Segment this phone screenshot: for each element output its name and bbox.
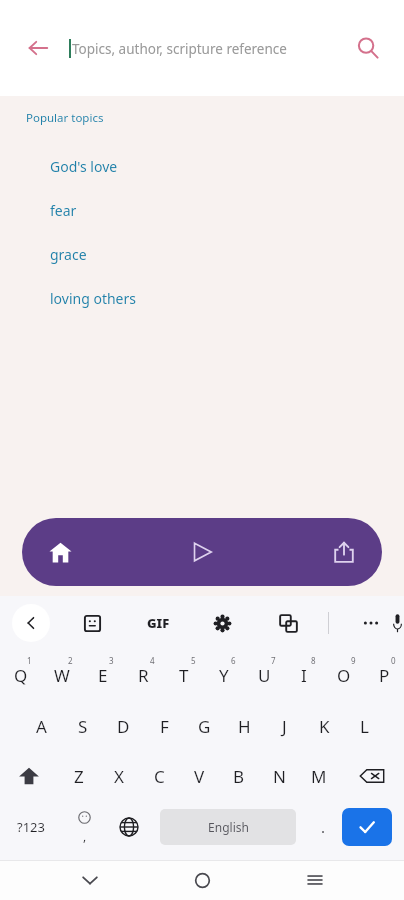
button[interactable]: F bbox=[144, 701, 184, 751]
button[interactable]: Emoji bbox=[62, 801, 106, 853]
staticText: 5 bbox=[191, 655, 196, 666]
staticText: GIF bbox=[147, 614, 170, 632]
button[interactable]: Backspace bbox=[339, 751, 404, 801]
staticText: A bbox=[36, 715, 47, 738]
staticText: Q bbox=[14, 664, 28, 687]
staticText: 2 bbox=[68, 655, 73, 666]
button[interactable]: C bbox=[139, 751, 179, 801]
button[interactable]: M bbox=[299, 751, 339, 801]
staticText: P bbox=[379, 664, 390, 687]
button[interactable]: Collapse toolbar bbox=[12, 604, 50, 642]
button[interactable]: N bbox=[259, 751, 299, 801]
button[interactable]: Settings bbox=[202, 603, 242, 643]
button[interactable]: God's love bbox=[0, 144, 404, 188]
staticText: J bbox=[282, 715, 287, 738]
staticText: R bbox=[138, 664, 149, 687]
staticText: H bbox=[238, 715, 251, 738]
button[interactable]: Q bbox=[0, 649, 41, 701]
staticText: . bbox=[321, 817, 326, 837]
staticText: 9 bbox=[351, 655, 356, 666]
staticText: F bbox=[160, 715, 169, 738]
staticText: K bbox=[319, 715, 330, 738]
button[interactable]: Stickers bbox=[72, 603, 112, 643]
button[interactable]: H bbox=[224, 701, 264, 751]
button[interactable]: Enter bbox=[342, 808, 392, 846]
button[interactable]: Play bbox=[142, 518, 262, 586]
staticText: grace bbox=[50, 245, 87, 264]
staticText: G bbox=[198, 715, 211, 738]
staticText: M bbox=[311, 765, 327, 788]
button[interactable]: T bbox=[164, 649, 204, 701]
button[interactable]: Home bbox=[179, 860, 225, 900]
button[interactable]: fear bbox=[0, 188, 404, 232]
button[interactable]: loving others bbox=[0, 276, 404, 320]
button[interactable]: Home bbox=[22, 518, 142, 586]
staticText: S bbox=[78, 715, 88, 738]
staticText: 4 bbox=[150, 655, 155, 666]
staticText: 8 bbox=[311, 655, 316, 666]
staticText: 7 bbox=[271, 655, 276, 666]
staticText: L bbox=[360, 715, 369, 738]
staticText: C bbox=[154, 765, 165, 788]
button[interactable]: I bbox=[284, 649, 324, 701]
button[interactable]: U bbox=[244, 649, 284, 701]
button[interactable]: Back bbox=[67, 860, 113, 900]
button[interactable]: W bbox=[41, 649, 82, 701]
button[interactable]: V bbox=[179, 751, 219, 801]
button[interactable]: R bbox=[123, 649, 164, 701]
staticText: God's love bbox=[50, 157, 118, 176]
staticText: fear bbox=[50, 201, 77, 220]
staticText: 3 bbox=[109, 655, 114, 666]
button[interactable]: Popular topics bbox=[26, 108, 104, 128]
staticText: W bbox=[54, 664, 70, 687]
button[interactable]: . bbox=[304, 801, 342, 853]
button[interactable]: Share bbox=[262, 518, 382, 586]
staticText: E bbox=[98, 664, 108, 687]
button[interactable]: Shift bbox=[0, 751, 58, 801]
button[interactable]: ?123 bbox=[0, 801, 62, 853]
staticText: ?123 bbox=[17, 818, 45, 836]
button[interactable]: grace bbox=[0, 232, 404, 276]
staticText: T bbox=[179, 664, 189, 687]
staticText: Popular topics bbox=[26, 110, 104, 126]
button[interactable]: K bbox=[304, 701, 344, 751]
staticText: Topics, author, scripture reference bbox=[72, 40, 287, 58]
staticText: 0 bbox=[391, 655, 396, 666]
staticText: B bbox=[233, 765, 245, 788]
button[interactable]: X bbox=[99, 751, 139, 801]
button[interactable]: D bbox=[103, 701, 144, 751]
button[interactable]: P bbox=[364, 649, 404, 701]
button[interactable]: S bbox=[62, 701, 103, 751]
button[interactable]: GIF bbox=[138, 603, 178, 643]
button[interactable]: E bbox=[82, 649, 123, 701]
button[interactable]: O bbox=[324, 649, 364, 701]
staticText: 1 bbox=[27, 655, 32, 666]
button[interactable]: G bbox=[184, 701, 224, 751]
button[interactable]: Voice input bbox=[391, 602, 404, 644]
button[interactable]: Search bbox=[344, 24, 392, 72]
staticText: N bbox=[273, 765, 286, 788]
button[interactable]: A bbox=[21, 701, 62, 751]
button[interactable]: Back bbox=[14, 24, 62, 72]
staticText: English bbox=[208, 819, 249, 835]
staticText: 6 bbox=[231, 655, 236, 666]
staticText: X bbox=[114, 765, 124, 788]
button[interactable]: Topics, author, scripture reference bbox=[62, 26, 344, 70]
staticText: D bbox=[117, 715, 130, 738]
button[interactable]: B bbox=[219, 751, 259, 801]
button[interactable]: Recent apps bbox=[292, 860, 338, 900]
staticText: Y bbox=[219, 664, 229, 687]
button[interactable]: English bbox=[160, 809, 296, 845]
button[interactable]: Change language bbox=[106, 801, 152, 853]
staticText: I bbox=[301, 664, 307, 687]
staticText: U bbox=[258, 664, 271, 687]
button[interactable]: Y bbox=[204, 649, 244, 701]
button[interactable]: More options bbox=[351, 603, 391, 643]
button[interactable]: Z bbox=[58, 751, 99, 801]
staticText: , bbox=[83, 828, 87, 844]
staticText: loving others bbox=[50, 289, 136, 308]
staticText: O bbox=[337, 664, 351, 687]
button[interactable]: Translate bbox=[268, 603, 308, 643]
button[interactable]: J bbox=[264, 701, 304, 751]
button[interactable]: L bbox=[344, 701, 384, 751]
